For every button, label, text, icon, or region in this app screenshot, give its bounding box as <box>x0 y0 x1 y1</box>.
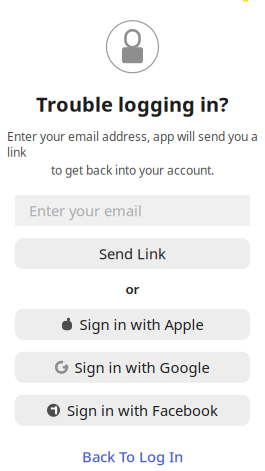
button[interactable]: Enter your email <box>15 195 250 226</box>
staticText: Sign in with Facebook <box>67 401 218 420</box>
staticText: or <box>125 280 139 298</box>
button[interactable]: Back To Log In <box>68 442 197 471</box>
staticText: Sign in with Google <box>74 358 209 377</box>
button[interactable]: Sign in with Facebook <box>15 395 250 426</box>
staticText: Send Link <box>99 244 166 263</box>
button[interactable]: Sign in with Apple <box>15 309 250 340</box>
button[interactable]: Send Link <box>15 238 250 269</box>
staticText: Sign in with Apple <box>79 315 203 334</box>
staticText: to get back into your account. <box>51 162 214 178</box>
button[interactable]: Sign in with Google <box>15 352 250 383</box>
staticText: Trouble logging in? <box>36 91 229 117</box>
staticText: Back To Log In <box>82 447 183 466</box>
staticText: Enter your email <box>29 201 142 220</box>
staticText: Enter your email address, app will send … <box>7 128 258 160</box>
